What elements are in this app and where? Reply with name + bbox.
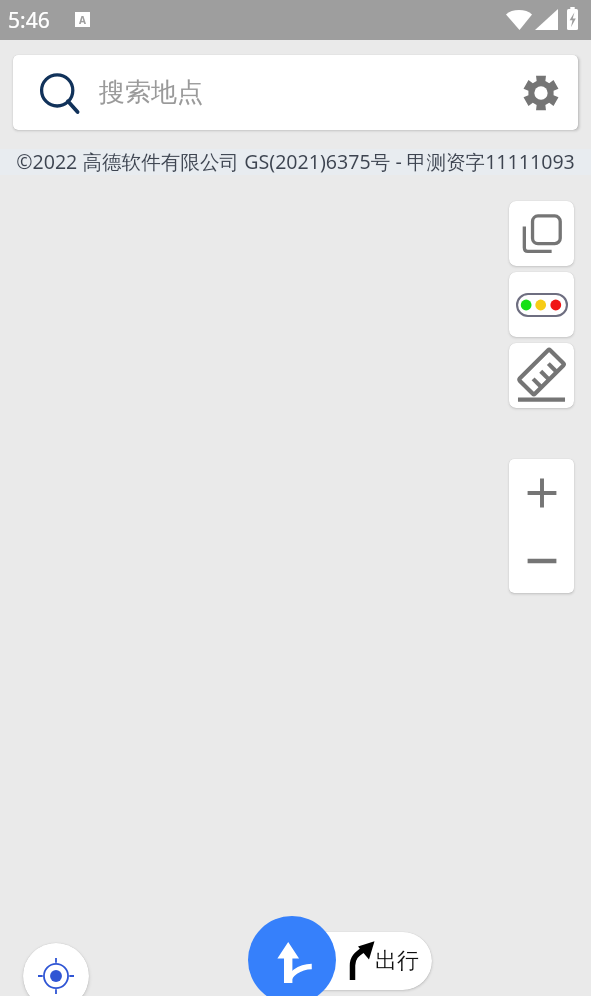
button[interactable]: Settings: [503, 55, 578, 130]
button[interactable]: Traffic: [509, 272, 574, 337]
staticText: ©2022 高德软件有限公司 GS(2021)6375号 - 甲测资字11111…: [10, 148, 581, 175]
button[interactable]: Measure distance: [509, 343, 574, 408]
staticText: 出行: [375, 947, 419, 975]
staticText: 搜索地点: [99, 76, 203, 109]
button[interactable]: 出行: [286, 932, 432, 990]
button[interactable]: Route: [248, 916, 336, 996]
button[interactable]: 搜索地点: [13, 55, 578, 130]
button[interactable]: Zoom out: [509, 527, 574, 591]
button[interactable]: Map layers: [509, 201, 574, 266]
staticText: A: [79, 13, 86, 27]
button[interactable]: Zoom in: [509, 459, 574, 527]
staticText: 5:46: [8, 6, 50, 35]
button[interactable]: My location: [23, 943, 89, 996]
